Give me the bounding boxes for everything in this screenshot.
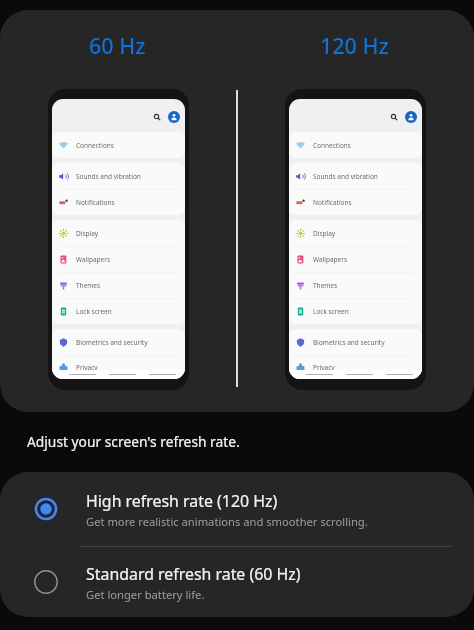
button[interactable]: Wallpapers	[289, 247, 422, 272]
staticText: Sounds and vibration	[313, 172, 378, 181]
button[interactable]: Biometrics and security	[52, 329, 185, 355]
staticText: Connections	[313, 141, 351, 150]
other: Search	[388, 111, 400, 123]
button[interactable]: Biometrics and security	[289, 329, 422, 355]
button[interactable]: Themes	[52, 273, 185, 298]
staticText: Privacy	[313, 363, 335, 372]
staticText: Themes	[76, 281, 101, 290]
button[interactable]: Standard refresh rate (60 Hz)	[0, 547, 474, 617]
button[interactable]: Display	[289, 220, 422, 246]
button[interactable]: Privacy	[289, 356, 422, 379]
staticText: Display	[76, 229, 99, 238]
staticText: Sounds and vibration	[76, 172, 141, 181]
button[interactable]: Lock screen	[289, 299, 422, 324]
button[interactable]: Notifications	[52, 190, 185, 215]
button[interactable]: Connections	[52, 132, 185, 158]
staticText: 60 Hz	[89, 31, 146, 60]
staticText: Lock screen	[76, 307, 112, 316]
button[interactable]: High refresh rate (120 Hz)	[0, 472, 474, 546]
button[interactable]: Themes	[289, 273, 422, 298]
button[interactable]: Notifications	[289, 190, 422, 215]
staticText: Connections	[76, 141, 114, 150]
button[interactable]: Sounds and vibration	[52, 163, 185, 189]
staticText: Wallpapers	[313, 255, 348, 264]
button[interactable]: Sounds and vibration	[289, 163, 422, 189]
staticText: Lock screen	[313, 307, 349, 316]
staticText: Display	[313, 229, 336, 238]
other: Account	[168, 111, 180, 123]
staticText: Standard refresh rate (60 Hz)	[86, 563, 301, 585]
button[interactable]: Lock screen	[52, 299, 185, 324]
button[interactable]: Privacy	[52, 356, 185, 379]
staticText: High refresh rate (120 Hz)	[86, 490, 278, 512]
button[interactable]: Connections	[289, 132, 422, 158]
staticText: 120 Hz	[320, 31, 389, 60]
staticText: Biometrics and security	[76, 338, 148, 347]
other: Account	[405, 111, 417, 123]
button[interactable]: Display	[52, 220, 185, 246]
staticText: Themes	[313, 281, 338, 290]
staticText: Privacy	[76, 363, 98, 372]
other: Search	[151, 111, 163, 123]
staticText: Adjust your screen's refresh rate.	[27, 432, 240, 451]
staticText: Biometrics and security	[313, 338, 385, 347]
staticText: Get more realistic animations and smooth…	[86, 514, 368, 529]
staticText: Get longer battery life.	[86, 587, 205, 602]
staticText: Notifications	[76, 198, 115, 207]
staticText: Notifications	[313, 198, 352, 207]
staticText: Wallpapers	[76, 255, 111, 264]
button[interactable]: Wallpapers	[52, 247, 185, 272]
